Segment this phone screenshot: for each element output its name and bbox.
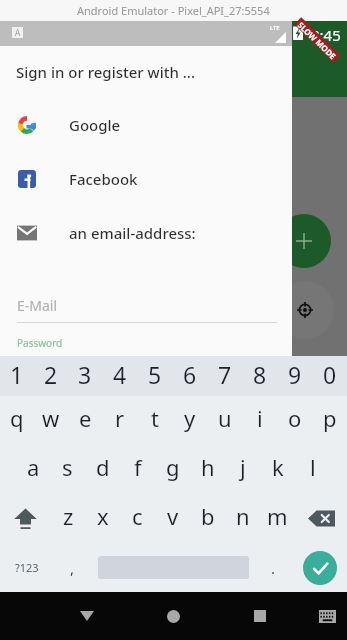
button[interactable]: , — [54, 543, 91, 592]
button[interactable]: l — [295, 445, 330, 494]
button[interactable]: j — [225, 445, 260, 494]
staticText: , — [70, 558, 75, 578]
staticText: 6 — [183, 359, 197, 390]
button[interactable]: w — [34, 396, 68, 445]
button[interactable]: ?123 — [0, 543, 54, 592]
staticText: 3 — [78, 359, 92, 390]
staticText: 8:45 — [311, 25, 341, 45]
staticText: 4 — [113, 359, 127, 390]
button[interactable]: m — [260, 494, 295, 543]
staticText: a — [27, 452, 40, 482]
staticText: w — [42, 403, 60, 433]
button[interactable]: 4 — [102, 356, 137, 396]
button[interactable]: 9 — [277, 356, 312, 396]
button[interactable]: z — [51, 494, 85, 543]
button[interactable]: Facebook — [0, 152, 292, 206]
button[interactable]: Switch keyboard — [305, 592, 347, 640]
staticText: z — [63, 501, 74, 531]
staticText: LTE — [270, 24, 280, 32]
staticText: . — [271, 558, 276, 578]
button[interactable]: o — [277, 396, 312, 445]
button[interactable]: Recents — [237, 592, 283, 640]
staticText: an email-address: — [69, 223, 196, 243]
button[interactable]: My location — [276, 281, 334, 339]
staticText: Google — [69, 115, 121, 135]
button[interactable]: k — [260, 445, 295, 494]
button[interactable]: y — [172, 396, 207, 445]
staticText: Facebook — [69, 169, 138, 189]
button[interactable]: Backspace — [295, 494, 347, 543]
button[interactable]: 3 — [68, 356, 102, 396]
staticText: q — [10, 403, 24, 433]
staticText: 7 — [218, 359, 232, 390]
staticText: E-Mail — [17, 296, 58, 315]
button[interactable]: t — [137, 396, 172, 445]
button[interactable]: Shift — [0, 494, 51, 543]
staticText: m — [267, 501, 288, 531]
button[interactable]: 2 — [34, 356, 68, 396]
staticText: 9 — [288, 359, 302, 390]
button[interactable]: Google — [0, 98, 292, 152]
staticText: r — [115, 403, 125, 433]
button[interactable]: f — [120, 445, 155, 494]
staticText: 2 — [44, 359, 58, 390]
button[interactable]: Home — [150, 592, 196, 640]
button[interactable]: r — [102, 396, 137, 445]
staticText: x — [97, 501, 109, 531]
staticText: 0 — [323, 359, 337, 390]
staticText: Password — [17, 336, 63, 350]
staticText: f — [134, 452, 142, 482]
staticText: c — [132, 501, 143, 531]
button[interactable]: v — [155, 494, 190, 543]
button[interactable]: Back — [64, 592, 110, 640]
staticText: Sign in or register with ... — [16, 62, 196, 82]
button[interactable]: Enter — [292, 543, 347, 592]
staticText: 1 — [10, 359, 24, 390]
button[interactable]: x — [85, 494, 120, 543]
staticText: b — [201, 501, 215, 531]
staticText: Android Emulator - Pixel_API_27:5554 — [77, 3, 270, 18]
button[interactable]: a — [16, 445, 50, 494]
staticText: A — [15, 27, 21, 38]
staticText: g — [166, 452, 180, 482]
button[interactable]: Add — [277, 214, 331, 268]
button[interactable]: 1 — [0, 356, 34, 396]
staticText: u — [218, 403, 232, 433]
staticText: j — [240, 452, 246, 482]
button[interactable]: 6 — [172, 356, 207, 396]
button[interactable]: e — [68, 396, 102, 445]
button[interactable]: 5 — [137, 356, 172, 396]
button[interactable]: i — [242, 396, 277, 445]
staticText: h — [201, 452, 215, 482]
staticText: SLOW MODE — [296, 19, 339, 61]
button[interactable]: s — [50, 445, 85, 494]
staticText: ?123 — [15, 560, 39, 575]
button[interactable]: b — [190, 494, 225, 543]
staticText: 5 — [148, 359, 162, 390]
staticText: 8 — [253, 359, 267, 390]
staticText: l — [310, 452, 316, 482]
staticText: i — [257, 403, 263, 433]
button[interactable]: Space — [91, 543, 255, 592]
button[interactable]: u — [207, 396, 242, 445]
button[interactable]: q — [0, 396, 34, 445]
button[interactable]: p — [312, 396, 347, 445]
staticText: v — [167, 501, 179, 531]
staticText: s — [62, 452, 73, 482]
staticText: e — [79, 403, 92, 433]
button[interactable]: h — [190, 445, 225, 494]
button[interactable]: d — [85, 445, 120, 494]
staticText: y — [184, 403, 196, 433]
button[interactable]: c — [120, 494, 155, 543]
button[interactable]: n — [225, 494, 260, 543]
staticText: t — [151, 403, 159, 433]
staticText: p — [323, 403, 337, 433]
staticText: d — [96, 452, 110, 482]
button[interactable]: an email-address: — [0, 206, 292, 260]
button[interactable]: g — [155, 445, 190, 494]
button[interactable]: . — [255, 543, 292, 592]
staticText: k — [272, 452, 284, 482]
button[interactable]: 8 — [242, 356, 277, 396]
button[interactable]: 7 — [207, 356, 242, 396]
button[interactable]: 0 — [312, 356, 347, 396]
